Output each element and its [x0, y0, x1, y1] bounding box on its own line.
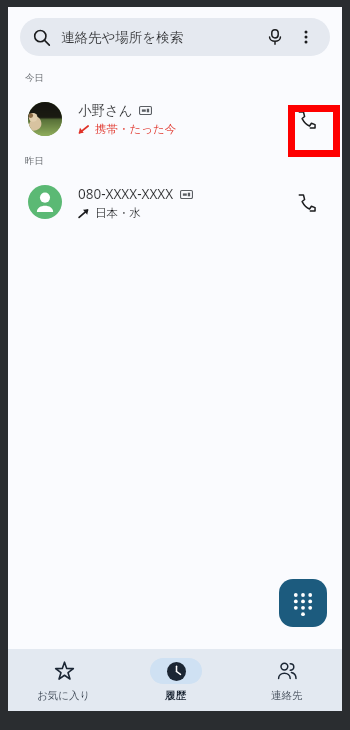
- staticText: 小野さん: [78, 102, 133, 119]
- button[interactable]: Call 080-XXXX-XXXX: [284, 180, 328, 224]
- staticText: 今日: [25, 72, 44, 84]
- staticText: 連絡先: [271, 689, 303, 702]
- staticText: 携帯・たった今: [95, 122, 177, 136]
- button[interactable]: Call 小野さん: [284, 97, 328, 141]
- button[interactable]: お気に入り: [8, 658, 120, 702]
- button[interactable]: 連絡先: [231, 658, 342, 702]
- staticText: 連絡先や場所を検索: [61, 29, 184, 46]
- staticText: 080-XXXX-XXXX: [78, 185, 174, 203]
- button[interactable]: 小野さん: [8, 88, 342, 150]
- button[interactable]: Voice search: [263, 25, 287, 49]
- staticText: 昨日: [25, 155, 44, 167]
- button[interactable]: Dialpad: [279, 579, 327, 627]
- staticText: お気に入り: [37, 689, 91, 702]
- button[interactable]: 連絡先や場所を検索: [20, 18, 330, 56]
- staticText: 日本・水: [95, 206, 141, 220]
- staticText: 履歴: [165, 689, 186, 702]
- button[interactable]: 080-XXXX-XXXX: [8, 171, 342, 233]
- button[interactable]: More options: [295, 26, 317, 48]
- button[interactable]: 履歴: [120, 658, 231, 702]
